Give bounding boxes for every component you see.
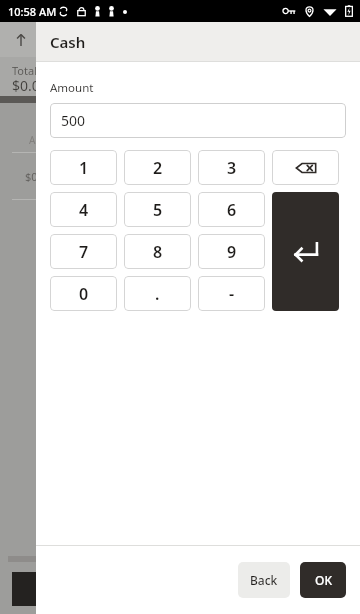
staticText: 1 — [79, 157, 89, 179]
button[interactable]: 8 — [124, 234, 191, 269]
button[interactable]: Back — [238, 562, 290, 598]
button[interactable]: 1 — [50, 150, 117, 185]
button[interactable]: 5 — [124, 192, 191, 227]
button[interactable]: 2 — [124, 150, 191, 185]
button[interactable]: 7 — [50, 234, 117, 269]
staticText: 9 — [227, 241, 237, 263]
staticText: 4 — [79, 199, 89, 221]
button[interactable]: Backspace — [272, 150, 339, 185]
button[interactable]: 500 — [50, 103, 346, 138]
button[interactable]: 4 — [50, 192, 117, 227]
staticText: 2 — [153, 157, 163, 179]
button[interactable]: OK — [300, 562, 346, 598]
button[interactable]: - — [198, 276, 265, 311]
staticText: . — [155, 283, 160, 305]
staticText: $0.00 — [12, 76, 48, 95]
staticText: 500 — [61, 111, 86, 130]
staticText: Amount — [50, 80, 94, 96]
staticText: - — [229, 283, 235, 305]
staticText: OK — [315, 572, 332, 588]
staticText: A — [29, 133, 36, 147]
staticText: 8 — [153, 241, 163, 263]
staticText: Cash — [50, 32, 86, 52]
button[interactable]: Enter — [272, 192, 339, 311]
staticText: 0 — [79, 283, 89, 305]
button[interactable]: 9 — [198, 234, 265, 269]
button[interactable]: 3 — [198, 150, 265, 185]
staticText: 6 — [227, 199, 237, 221]
staticText: Back — [250, 572, 278, 588]
staticText: 7 — [79, 241, 89, 263]
staticText: Total — [12, 63, 37, 78]
button[interactable]: 0 — [50, 276, 117, 311]
staticText: 3 — [227, 157, 237, 179]
staticText: 10:58 AM — [8, 4, 57, 19]
button[interactable]: 6 — [198, 192, 265, 227]
staticText: 5 — [153, 199, 163, 221]
staticText: $0 — [25, 169, 38, 184]
button[interactable]: . — [124, 276, 191, 311]
